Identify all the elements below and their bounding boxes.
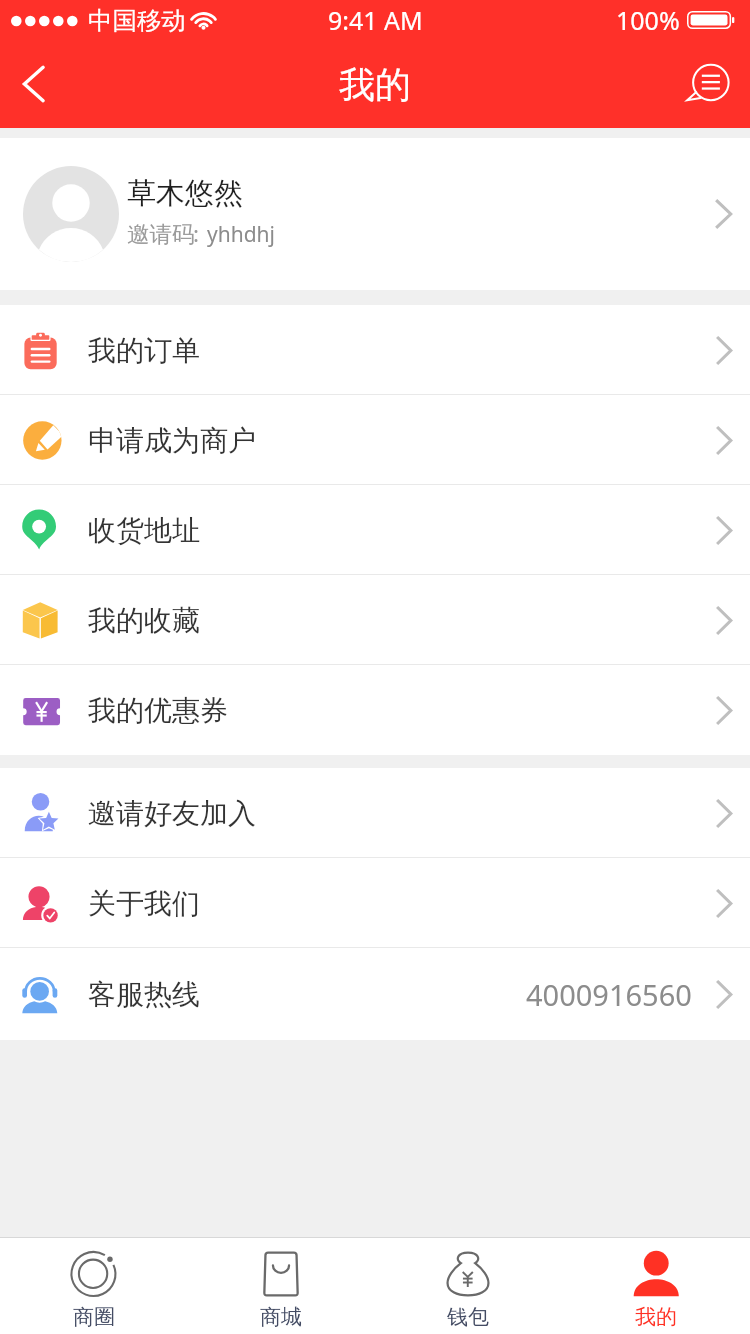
staticText: 我的收藏 bbox=[88, 603, 200, 638]
button[interactable]: 草木悠然 bbox=[0, 138, 750, 290]
staticText: 我的订单 bbox=[88, 333, 200, 368]
staticText: 4000916560 bbox=[526, 975, 692, 1014]
button[interactable]: 客服热线 bbox=[0, 948, 750, 1040]
staticText: 邀请码 bbox=[127, 220, 195, 248]
staticText: 商城 bbox=[260, 1304, 302, 1330]
staticText: 收货地址 bbox=[88, 513, 200, 548]
staticText: 我的优惠券 bbox=[88, 693, 228, 728]
staticText: 申请成为商户 bbox=[88, 423, 256, 458]
button[interactable]: 关于我们 bbox=[0, 858, 750, 948]
staticText: 我的 bbox=[635, 1304, 677, 1330]
staticText: 9:41 AM bbox=[328, 3, 423, 37]
button[interactable]: Back bbox=[0, 40, 68, 128]
button[interactable]: 收货地址 bbox=[0, 485, 750, 575]
staticText: 我的 bbox=[339, 62, 411, 107]
button[interactable]: 我的收藏 bbox=[0, 575, 750, 665]
staticText: 中国移动 bbox=[88, 5, 186, 36]
staticText: 邀请好友加入 bbox=[88, 796, 256, 831]
staticText: yhhdhj bbox=[207, 220, 275, 249]
button[interactable]: 申请成为商户 bbox=[0, 395, 750, 485]
staticText: 客服热线 bbox=[88, 977, 200, 1012]
staticText: : bbox=[193, 218, 200, 249]
staticText: 草木悠然 bbox=[127, 175, 243, 212]
button[interactable]: 我的 bbox=[562, 1238, 750, 1334]
staticText: 商圈 bbox=[73, 1304, 115, 1330]
staticText: 关于我们 bbox=[88, 886, 200, 921]
button[interactable]: 商城 bbox=[187, 1238, 374, 1334]
button[interactable]: 邀请好友加入 bbox=[0, 768, 750, 858]
button[interactable]: 钱包 bbox=[374, 1238, 562, 1334]
button[interactable]: 我的优惠券 bbox=[0, 665, 750, 755]
button[interactable]: 商圈 bbox=[0, 1238, 187, 1334]
button[interactable]: Messages bbox=[662, 40, 750, 128]
button[interactable]: 我的订单 bbox=[0, 305, 750, 395]
staticText: 钱包 bbox=[447, 1304, 489, 1330]
staticText: 100% bbox=[616, 3, 680, 37]
